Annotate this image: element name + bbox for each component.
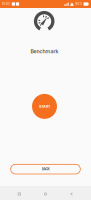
button[interactable]: Back [69,186,74,200]
button[interactable]: START [33,94,58,119]
button[interactable]: BACK [11,164,80,174]
staticText: BACK [41,167,49,171]
staticText: 85% [75,2,82,6]
staticText: 14:02 [2,2,10,6]
button[interactable]: Recent apps [17,186,22,200]
staticText: START [39,104,50,109]
button[interactable]: Home [43,186,48,200]
staticText: Benchmark [30,48,58,54]
